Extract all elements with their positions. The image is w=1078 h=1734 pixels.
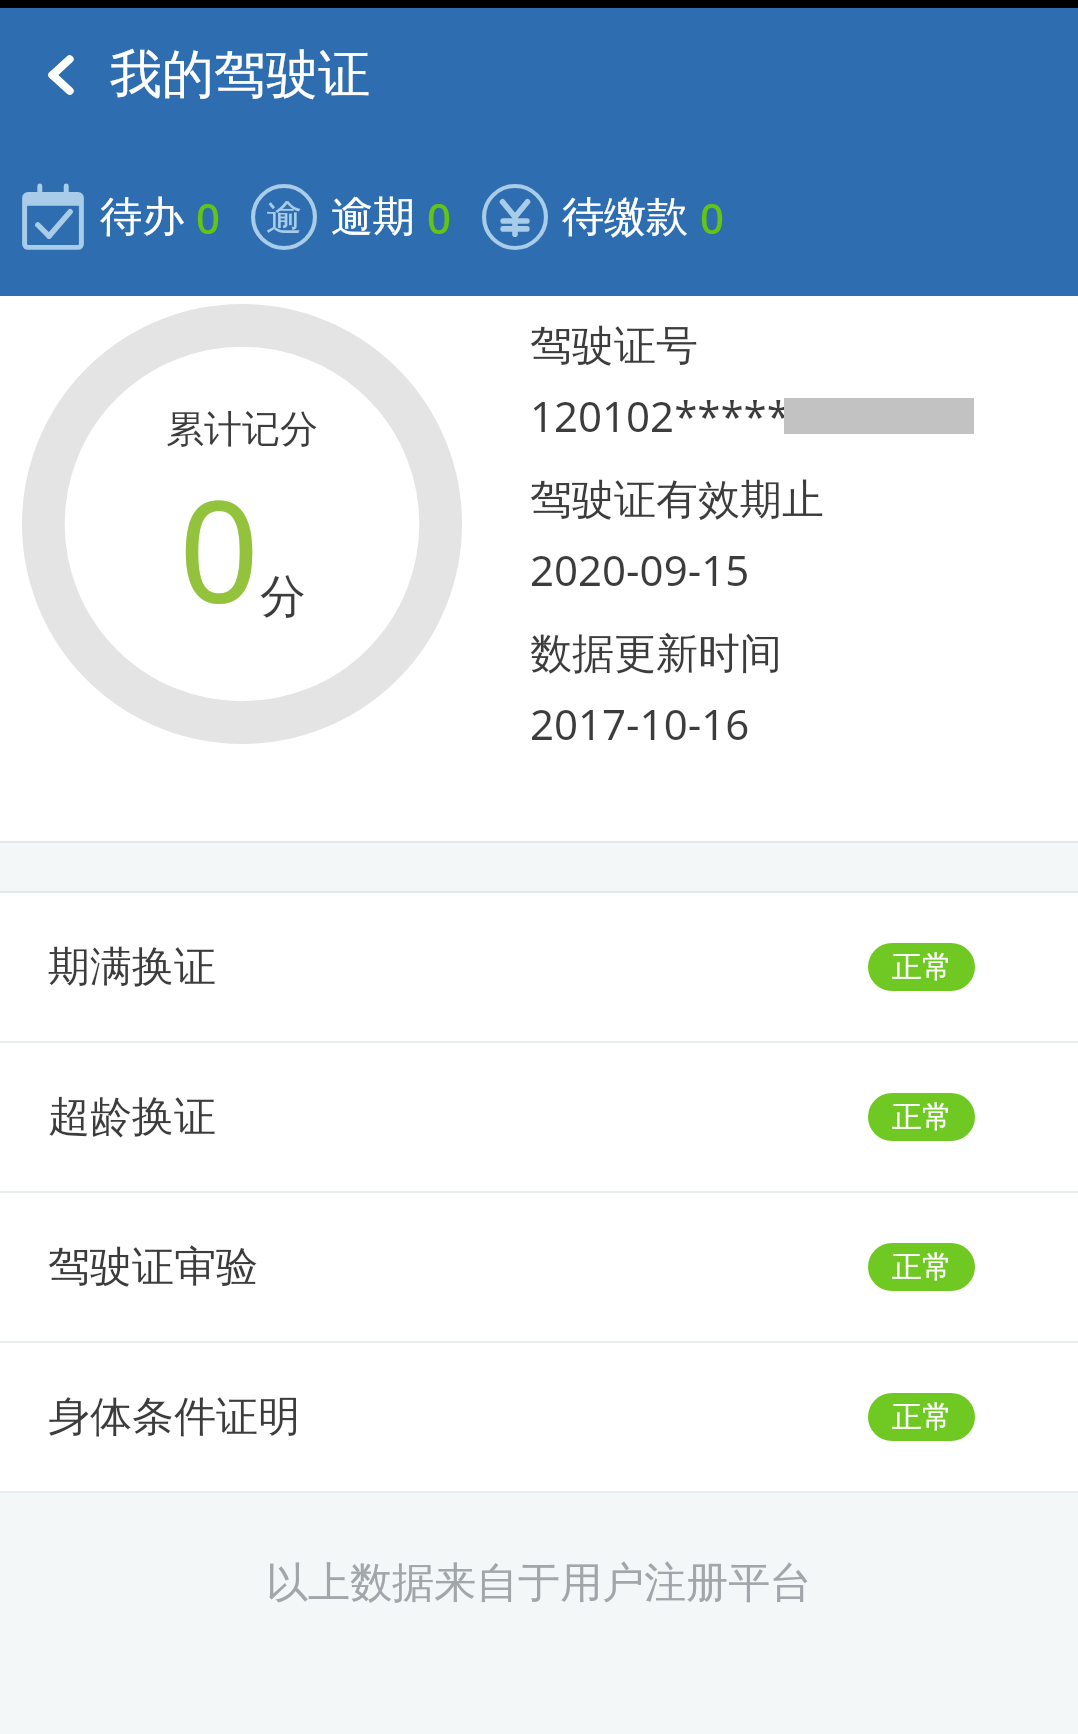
staticText: 以上数据来自于用户注册平台 (266, 1557, 812, 1610)
staticText: 身体条件证明 (48, 1391, 300, 1444)
staticText: 正常 (892, 948, 952, 986)
staticText: 分 (260, 568, 306, 626)
staticText: 逾 (266, 195, 302, 240)
staticText: 120102***** (530, 387, 790, 444)
button[interactable]: 超龄换证 (0, 1043, 1078, 1191)
staticText: 正常 (892, 1398, 952, 1436)
staticText: 驾驶证审验 (48, 1241, 258, 1294)
button[interactable]: 期满换证 (0, 893, 1078, 1041)
staticText: 驾驶证号 (530, 320, 698, 373)
staticText: 数据更新时间 (530, 628, 782, 681)
staticText: 2017-10-16 (530, 695, 750, 752)
button[interactable]: 待缴款 (478, 178, 729, 256)
button[interactable]: 逾 (247, 178, 456, 256)
staticText: 期满换证 (48, 941, 216, 994)
staticText: 我的驾驶证 (110, 42, 370, 108)
staticText: 0 (196, 189, 221, 246)
button[interactable]: 驾驶证审验 (0, 1193, 1078, 1341)
button[interactable]: 待办 (16, 178, 225, 256)
staticText: 正常 (892, 1248, 952, 1286)
staticText: 0 (700, 189, 725, 246)
staticText: 2020-09-15 (530, 541, 750, 598)
staticText: 累计记分 (166, 405, 318, 453)
staticText: 0 (427, 189, 452, 246)
staticText: 驾驶证有效期止 (530, 474, 824, 527)
staticText: 逾期 (331, 191, 415, 244)
button[interactable]: 身体条件证明 (0, 1343, 1078, 1491)
staticText: 超龄换证 (48, 1091, 216, 1144)
staticText: 待缴款 (562, 191, 688, 244)
staticText: 0 (179, 453, 260, 644)
staticText: 正常 (892, 1098, 952, 1136)
button[interactable]: Back (30, 34, 378, 116)
staticText: 待办 (100, 191, 184, 244)
